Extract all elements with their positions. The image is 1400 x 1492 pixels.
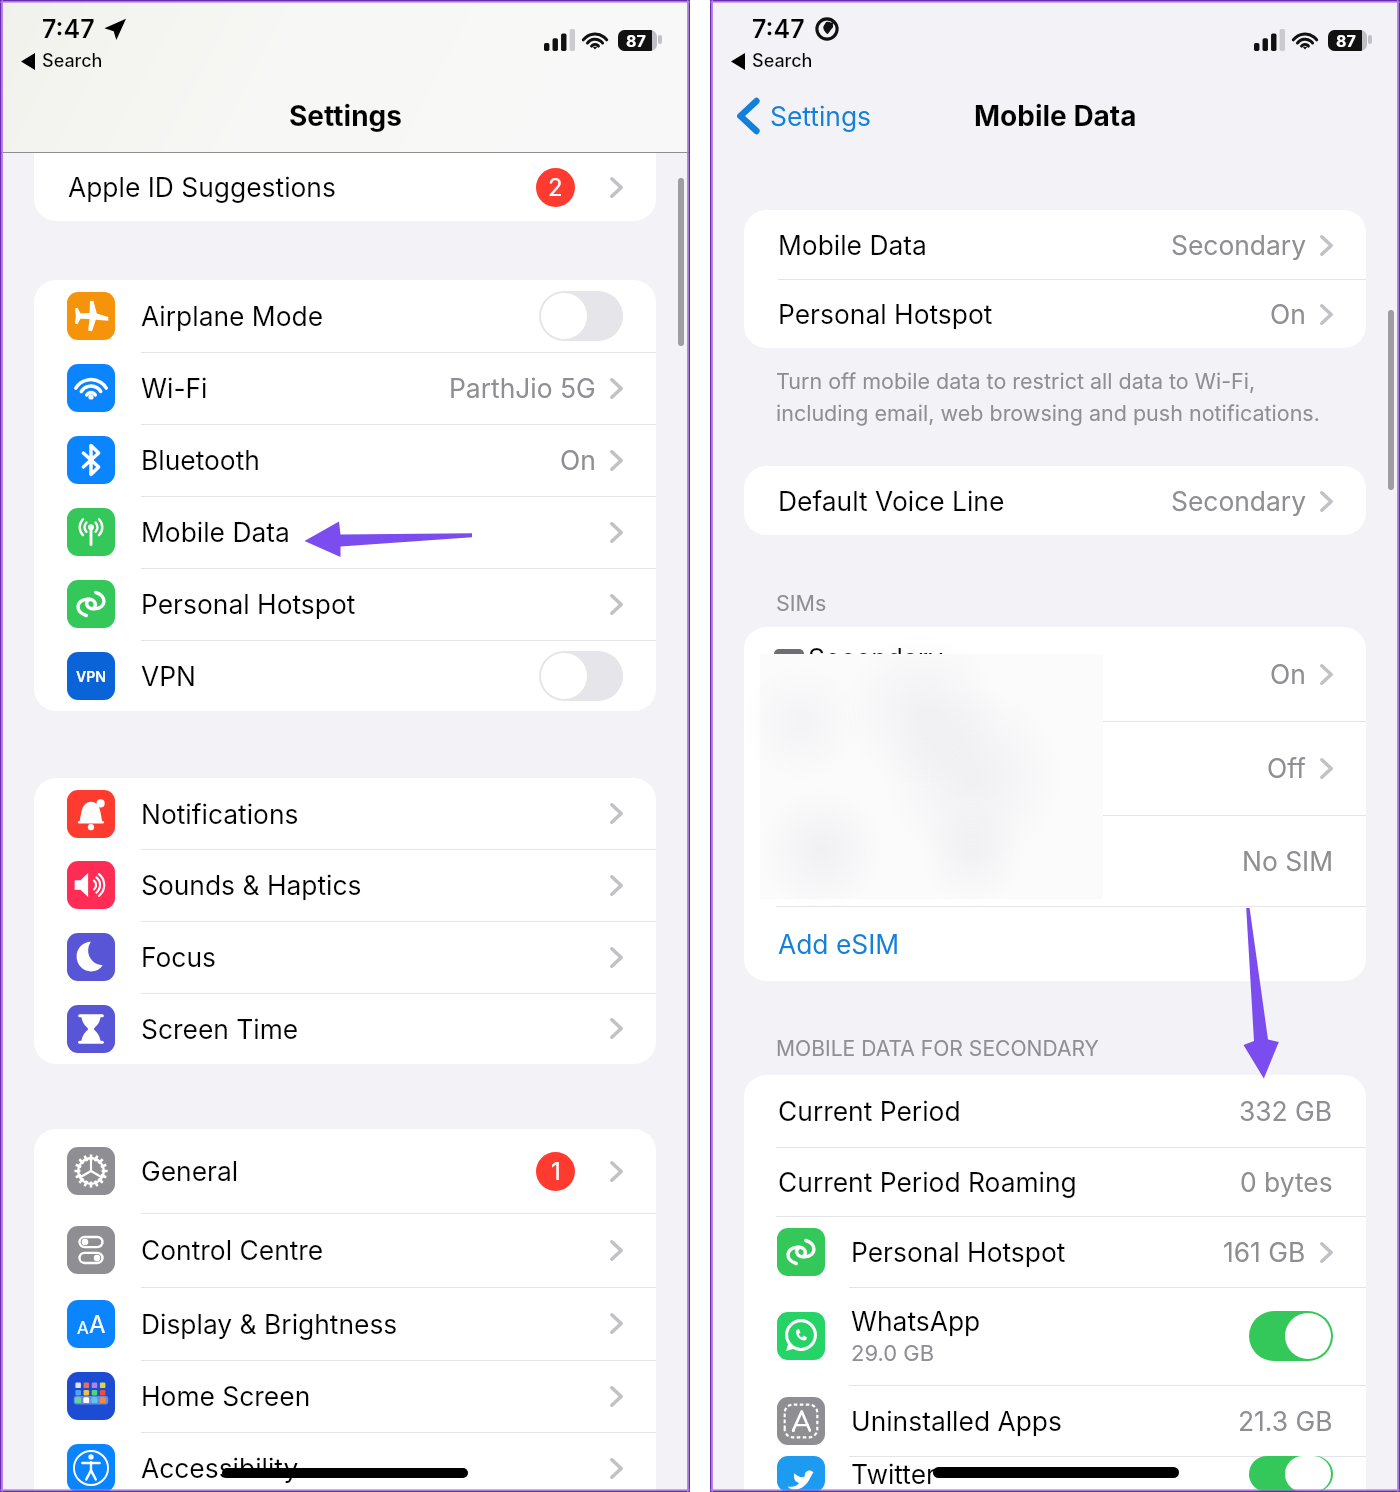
button[interactable]: Notifications (34, 778, 656, 849)
staticText: Add eSIM (778, 928, 900, 960)
staticText: A (89, 1310, 106, 1339)
button[interactable]: Current Period Roaming (744, 1147, 1366, 1216)
button[interactable]: Twitter (744, 1456, 1366, 1492)
button[interactable]: On (744, 627, 1366, 721)
staticText: 87 (1336, 31, 1356, 50)
staticText: Search (752, 50, 813, 72)
staticText: 0 bytes (1240, 1166, 1333, 1198)
staticText: Wi-Fi (141, 372, 208, 404)
staticText: 87 (626, 31, 646, 50)
staticText: Twitter (851, 1458, 937, 1490)
staticText: Home Screen (141, 1380, 311, 1412)
button[interactable]: Wi-Fi (34, 352, 656, 424)
button[interactable]: Control Centre (34, 1213, 656, 1287)
staticText: Default Voice Line (778, 485, 1005, 517)
staticText: Focus (141, 941, 216, 973)
staticText: SIMs (776, 590, 827, 616)
staticText: VPN (76, 668, 106, 685)
staticText: WhatsApp (851, 1305, 981, 1337)
staticText: Personal Hotspot (141, 588, 356, 620)
staticText: No SIM (1242, 845, 1333, 877)
staticText: Apple ID Suggestions (68, 171, 336, 203)
staticText: Display & Brightness (141, 1308, 398, 1340)
staticText: On (560, 444, 596, 476)
staticText: 29.0 GB (851, 1340, 935, 1367)
button[interactable]: Back to Settings (738, 94, 880, 138)
staticText: Settings (770, 100, 872, 132)
staticText: Personal Hotspot (851, 1236, 1066, 1268)
staticText: Off (1267, 752, 1306, 784)
staticText: 2 (548, 173, 563, 202)
button[interactable]: Toggle on (1249, 1311, 1333, 1361)
button[interactable]: WhatsApp (744, 1287, 1366, 1385)
staticText: 7:47 (42, 14, 95, 44)
staticText: Mobile Data (778, 229, 927, 261)
button[interactable]: Screen Time (34, 993, 656, 1064)
button[interactable]: Personal Hotspot (744, 279, 1366, 348)
button[interactable]: No SIM (744, 815, 1366, 906)
button[interactable]: Home Screen (34, 1360, 656, 1432)
staticText: 21.3 GB (1238, 1405, 1333, 1437)
staticText: ParthJio 5G (449, 372, 596, 404)
staticText: Secondary (808, 642, 943, 674)
button[interactable]: Personal Hotspot (34, 568, 656, 640)
staticText: A (77, 1318, 89, 1339)
staticText: Notifications (141, 798, 299, 830)
button[interactable]: Bluetooth (34, 424, 656, 496)
staticText: Search (42, 50, 103, 72)
staticText: 332 GB (1239, 1095, 1333, 1127)
staticText: Turn off mobile data to restrict all dat… (776, 368, 1320, 426)
staticText: Control Centre (141, 1234, 324, 1266)
staticText: Settings (289, 99, 402, 133)
button[interactable]: Default Voice Line (744, 466, 1366, 535)
staticText: Airplane Mode (141, 300, 324, 332)
button[interactable]: Airplane Mode (34, 280, 656, 352)
button[interactable]: Off (744, 721, 1366, 815)
staticText: Screen Time (141, 1013, 299, 1045)
button[interactable]: General (34, 1129, 656, 1213)
button[interactable]: Accessibility (34, 1432, 656, 1492)
staticText: On (1270, 298, 1306, 330)
button[interactable]: Mobile Data (34, 496, 656, 568)
button[interactable]: Focus (34, 921, 656, 993)
staticText: 1 (551, 1157, 561, 1186)
staticText: Secondary (1171, 229, 1306, 261)
staticText: On (1270, 658, 1306, 690)
staticText: Mobile Data (974, 99, 1137, 133)
button[interactable]: Toggle off (539, 291, 623, 341)
staticText: VPN (141, 660, 196, 692)
button[interactable]: Mobile Data (744, 210, 1366, 279)
button[interactable]: VPN (34, 640, 656, 711)
button[interactable]: Sounds & Haptics (34, 849, 656, 921)
staticText: Personal Hotspot (778, 298, 993, 330)
button[interactable]: Apple ID Suggestions (34, 153, 656, 221)
staticText: 161 GB (1223, 1236, 1306, 1268)
button[interactable]: A (34, 1287, 656, 1360)
staticText: General (141, 1155, 239, 1187)
staticText: Sounds & Haptics (141, 869, 362, 901)
button[interactable]: Current Period (744, 1075, 1366, 1147)
staticText: Secondary (1171, 485, 1306, 517)
staticText: Uninstalled Apps (851, 1405, 1062, 1437)
button[interactable]: Personal Hotspot (744, 1216, 1366, 1287)
staticText: 7:47 (752, 14, 805, 44)
staticText: Current Period Roaming (778, 1166, 1077, 1198)
button[interactable]: Toggle on (1249, 1456, 1333, 1492)
button[interactable]: Uninstalled Apps (744, 1385, 1366, 1456)
button[interactable]: Toggle off (539, 651, 623, 701)
staticText: MOBILE DATA FOR SECONDARY (776, 1036, 1099, 1062)
staticText: Accessibility (141, 1452, 299, 1484)
staticText: Mobile Data (141, 516, 290, 548)
staticText: Current Period (778, 1095, 961, 1127)
staticText: Bluetooth (141, 444, 260, 476)
button[interactable]: Add eSIM (744, 906, 1366, 981)
